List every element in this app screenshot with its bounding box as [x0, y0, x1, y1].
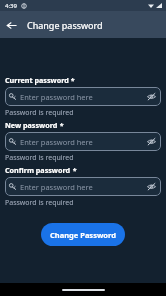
button[interactable]: Back — [0, 14, 22, 36]
staticText: 4:39 — [5, 2, 17, 10]
staticText: Change password — [27, 19, 103, 31]
button[interactable]: Change Password — [41, 223, 125, 246]
staticText: * — [71, 165, 77, 175]
staticText: Password is required — [5, 153, 74, 163]
staticText: Current password — [5, 75, 69, 85]
staticText: * — [58, 120, 64, 130]
staticText: Enter password here — [20, 92, 146, 102]
staticText: * — [69, 75, 75, 85]
button[interactable]: Enter password here — [5, 132, 161, 151]
staticText: Password is required — [5, 108, 74, 118]
staticText: Enter password here — [20, 182, 146, 192]
button[interactable]: Show password — [146, 181, 157, 192]
staticText: Change Password — [50, 230, 116, 240]
button[interactable]: Show password — [146, 136, 157, 147]
button[interactable]: Enter password here — [5, 177, 161, 196]
staticText: Password is required — [5, 198, 74, 208]
staticText: Confirm password — [5, 165, 71, 175]
button[interactable]: Show password — [146, 91, 157, 102]
staticText: New password — [5, 120, 58, 130]
staticText: Enter password here — [20, 137, 146, 147]
button[interactable]: Enter password here — [5, 87, 161, 106]
